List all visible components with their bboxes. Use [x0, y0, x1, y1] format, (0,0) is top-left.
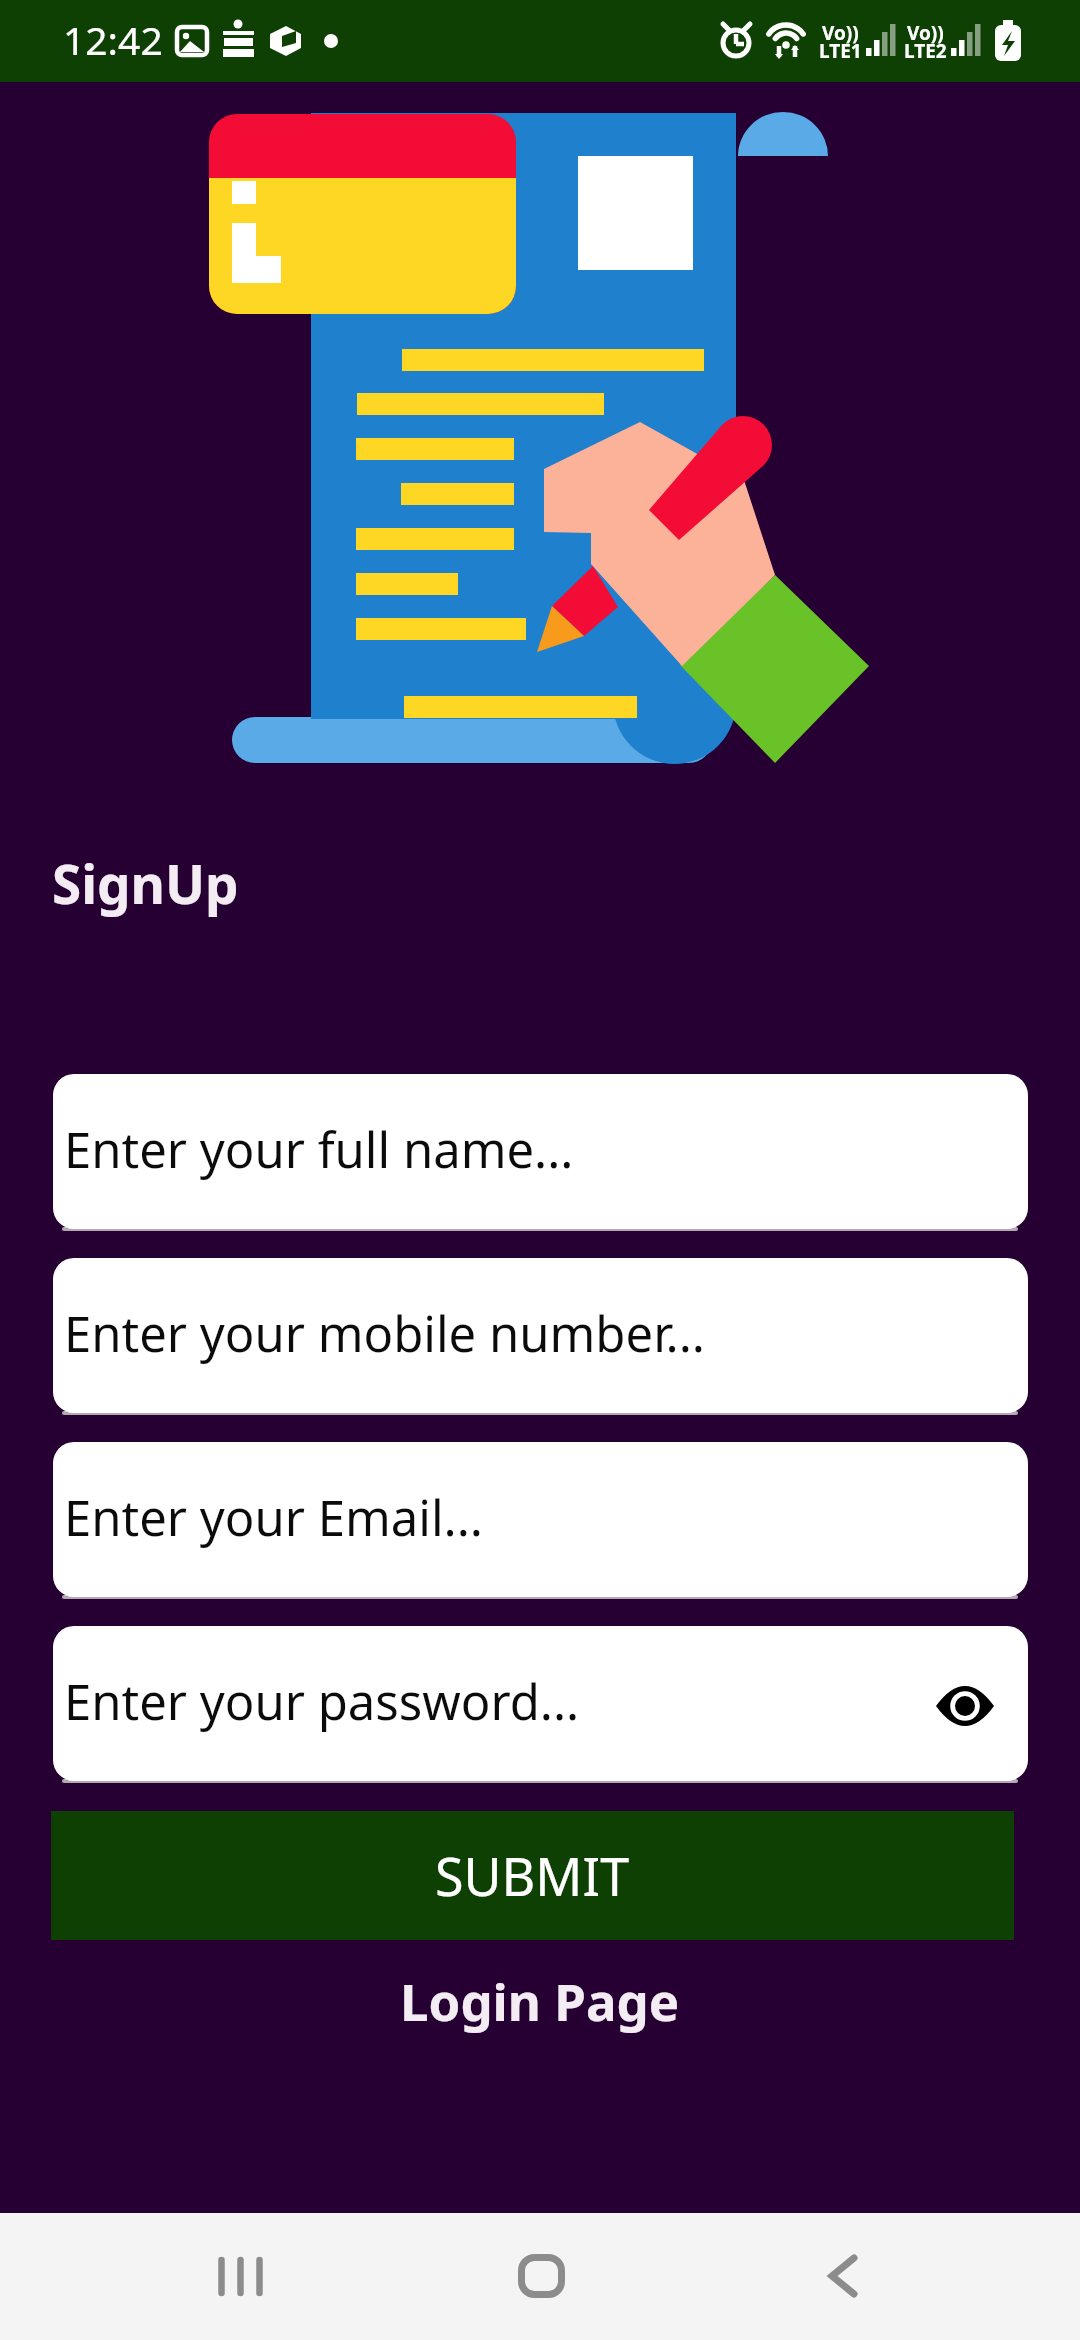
button[interactable]: Enter your full name... — [53, 1074, 1028, 1229]
staticText: Enter your mobile number... — [64, 1300, 705, 1367]
staticText: LTE2 — [904, 38, 947, 64]
button[interactable]: Login Page — [384, 1960, 696, 2041]
button[interactable]: Enter your mobile number... — [53, 1258, 1028, 1413]
button[interactable]: Recents — [185, 2231, 295, 2321]
button[interactable]: Show password — [925, 1666, 1005, 1746]
staticText: Enter your full name... — [64, 1116, 574, 1183]
button[interactable]: Enter your Email... — [53, 1442, 1028, 1597]
button[interactable]: Home — [486, 2231, 596, 2321]
staticText: SignUp — [52, 847, 239, 919]
staticText: Enter your Email... — [64, 1484, 483, 1551]
button[interactable]: SUBMIT — [51, 1811, 1014, 1940]
staticText: Vo)) — [822, 20, 859, 46]
staticText: Enter your password... — [64, 1668, 580, 1735]
staticText: Vo)) — [907, 20, 944, 46]
staticText: 12:42 — [63, 13, 163, 66]
button[interactable]: Back — [788, 2231, 898, 2321]
button[interactable]: Enter your password... — [53, 1626, 1028, 1781]
staticText: SUBMIT — [435, 1840, 630, 1911]
staticText: LTE1 — [819, 38, 862, 64]
